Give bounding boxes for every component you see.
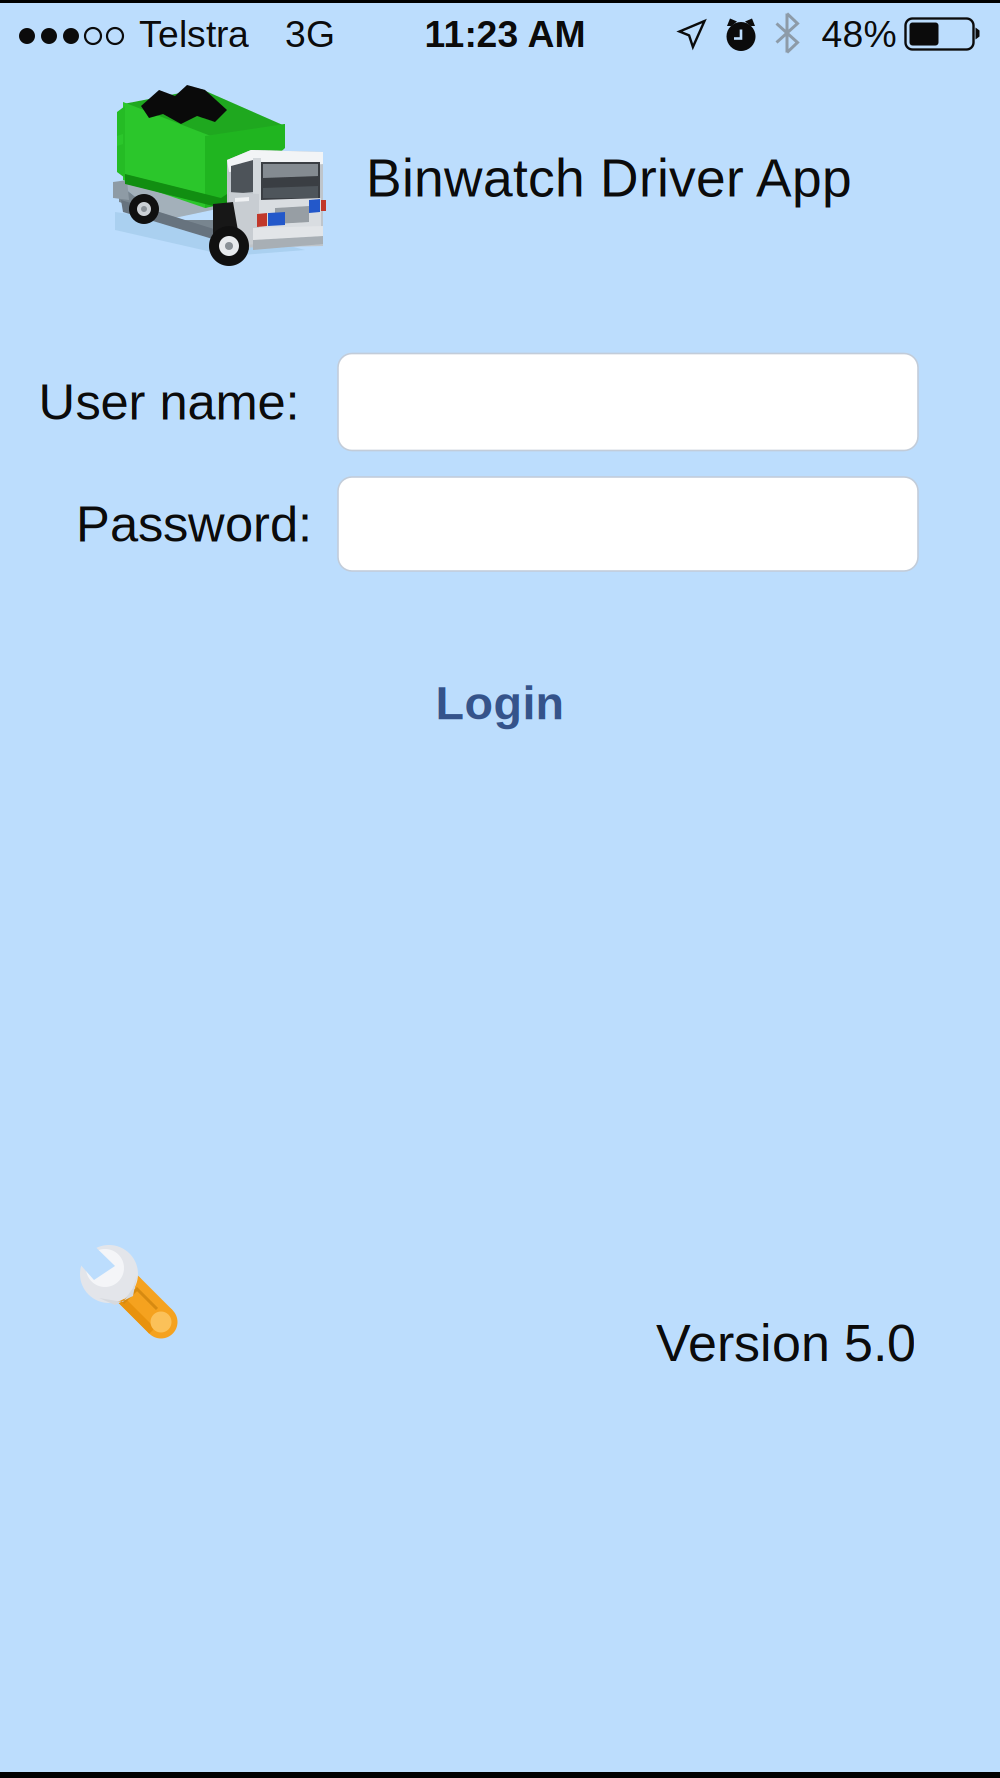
staticText: Telstra <box>139 13 249 55</box>
staticText: Login <box>435 677 564 729</box>
button[interactable]: Login <box>370 657 630 749</box>
staticText: 11:23 AM <box>424 13 585 55</box>
staticText: User name: <box>38 374 299 430</box>
staticText: Binwatch Driver App <box>366 148 852 208</box>
button[interactable]: Settings <box>78 1243 188 1353</box>
staticText: 3G <box>285 13 335 55</box>
staticText: 48% <box>821 13 896 55</box>
staticText: Version 5.0 <box>656 1314 916 1372</box>
staticText: Password: <box>76 496 312 552</box>
